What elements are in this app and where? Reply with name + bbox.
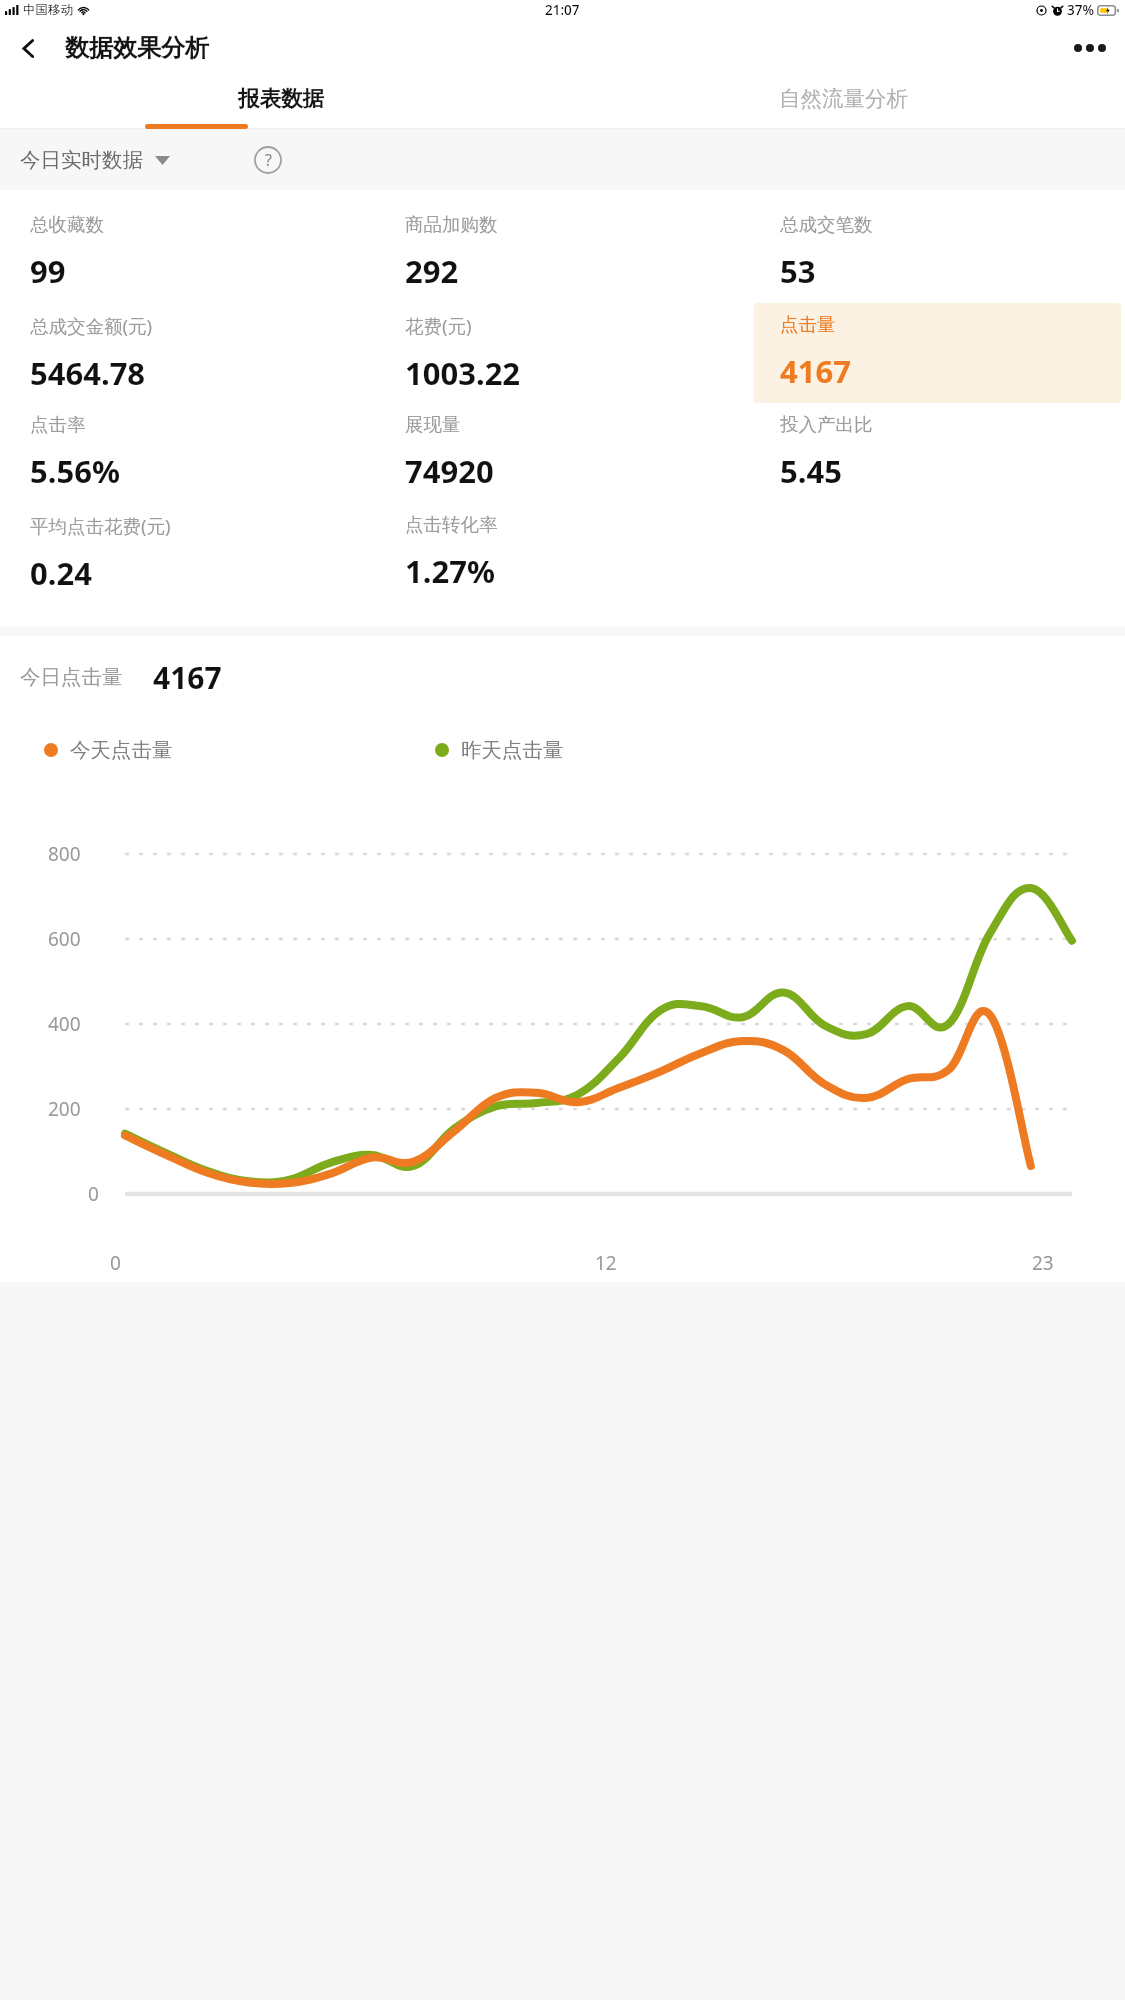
button[interactable]: 昨天点击量 [435,737,564,763]
staticText: 0 [110,1250,121,1276]
button[interactable]: Help [248,140,288,180]
staticText: 总成交金额(元) [30,313,153,338]
staticText: 600 [48,926,81,952]
staticText: 53 [780,250,816,292]
button[interactable]: 今天点击量 [44,737,173,763]
staticText: 23 [1032,1250,1054,1276]
staticText: 点击量 [780,313,836,336]
staticText: 292 [405,250,459,292]
staticText: 800 [48,841,81,867]
button[interactable]: 自然流量分析 [562,76,1125,129]
staticText: 点击率 [30,413,86,436]
staticText: 4167 [153,657,222,698]
staticText: 今日实时数据 [20,147,143,173]
staticText: 5.56% [30,450,120,492]
staticText: 今天点击量 [70,737,173,763]
button[interactable]: 花费(元) [379,303,746,403]
button[interactable]: 报表数据 [0,76,562,129]
staticText: 12 [595,1250,617,1276]
staticText: 400 [48,1011,81,1037]
staticText: 4167 [780,350,851,392]
staticText: 报表数据 [238,85,324,112]
staticText: 今日点击量 [20,664,123,690]
staticText: 平均点击花费(元) [30,513,171,538]
staticText: 1.27% [405,550,495,592]
staticText: 花费(元) [405,313,472,338]
staticText: 5.45 [780,450,842,492]
staticText: 1003.22 [405,352,521,394]
staticText: 99 [30,250,66,292]
staticText: 商品加购数 [405,213,498,236]
button[interactable]: 投入产出比 [754,403,1121,503]
staticText: 点击转化率 [405,513,498,536]
staticText: 0.24 [30,552,92,594]
button[interactable]: 总成交笔数 [754,203,1121,303]
button[interactable]: 展现量 [379,403,746,503]
staticText: 中国移动 [23,2,73,18]
staticText: 37% [1067,1,1094,19]
button[interactable]: 平均点击花费(元) [4,503,371,603]
staticText: 总成交笔数 [780,213,873,236]
staticText: 21:07 [545,1,580,19]
staticText: 74920 [405,450,494,492]
button[interactable]: 商品加购数 [379,203,746,303]
button[interactable]: Back [5,25,51,71]
staticText: 展现量 [405,413,461,436]
staticText: 投入产出比 [780,413,873,436]
staticText: 自然流量分析 [779,85,908,112]
button[interactable]: 点击量 [754,303,1121,403]
button[interactable]: More options [1065,23,1115,73]
staticText: 0 [88,1181,99,1207]
button[interactable]: 点击率 [4,403,371,503]
staticText: 昨天点击量 [461,737,564,763]
button[interactable]: 总成交金额(元) [4,303,371,403]
staticText: ? [265,149,272,171]
button[interactable]: 点击转化率 [379,503,746,603]
staticText: 5464.78 [30,352,146,394]
staticText: 总收藏数 [30,213,104,236]
staticText: 数据效果分析 [65,33,209,63]
button[interactable]: 总收藏数 [4,203,371,303]
button[interactable]: 今日实时数据 [20,147,170,173]
staticText: 200 [48,1096,81,1122]
